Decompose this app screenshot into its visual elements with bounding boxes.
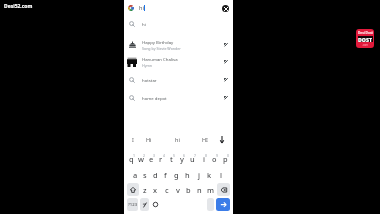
staticText: 3 (153, 153, 156, 158)
staticText: g (174, 170, 179, 180)
staticText: HI (202, 136, 208, 143)
staticText: DOSTI (358, 36, 373, 42)
staticText: Song by Stevie Wonder (142, 46, 181, 51)
staticText: c (165, 185, 169, 195)
button[interactable]: Voice input (150, 197, 161, 212)
button[interactable]: I (124, 131, 142, 148)
button[interactable]: Insert suggestion (220, 35, 231, 54)
button[interactable]: n (194, 182, 205, 197)
staticText: hi (175, 136, 180, 143)
button[interactable]: Search (216, 198, 230, 211)
button[interactable]: p (220, 151, 231, 166)
staticText: y (180, 154, 184, 164)
staticText: I (132, 136, 134, 143)
staticText: 9 (216, 153, 219, 158)
button[interactable]: v (172, 182, 183, 197)
button[interactable]: Happy Birthday (124, 35, 233, 54)
button[interactable]: u (187, 151, 198, 166)
button[interactable]: x (150, 182, 161, 197)
button[interactable]: r (156, 151, 166, 166)
button[interactable]: hi (124, 15, 233, 33)
button[interactable]: hi (124, 0, 233, 15)
staticText: f (164, 170, 167, 180)
staticText: 5 (173, 153, 176, 158)
staticText: 7 (194, 153, 197, 158)
button[interactable]: HI (196, 131, 214, 148)
button[interactable]: y (176, 151, 187, 166)
staticText: d (153, 170, 158, 180)
button[interactable]: q (126, 151, 136, 166)
staticText: hotstar (142, 77, 157, 83)
button[interactable]: Period (207, 198, 214, 211)
staticText: home depot (142, 95, 167, 101)
button[interactable]: Hi (140, 131, 158, 148)
staticText: l (220, 170, 222, 180)
staticText: 4 (163, 153, 166, 158)
staticText: Hanuman Chalisa (142, 56, 178, 62)
staticText: j (198, 170, 200, 180)
button[interactable]: w (136, 151, 146, 166)
staticText: o (212, 154, 217, 164)
button[interactable]: m (205, 182, 216, 197)
button[interactable]: Logo (356, 29, 374, 48)
button[interactable]: d (150, 167, 160, 182)
staticText: Hi (146, 136, 152, 143)
button[interactable]: h (182, 167, 193, 182)
staticText: a (133, 170, 138, 180)
staticText: 0 (227, 153, 230, 158)
button[interactable]: hi (168, 131, 186, 148)
staticText: 2 (143, 153, 146, 158)
button[interactable]: Insert suggestion (220, 71, 231, 89)
button[interactable]: o (209, 151, 220, 166)
button[interactable]: k (204, 167, 215, 182)
button[interactable]: j (193, 167, 204, 182)
button[interactable]: g (171, 167, 182, 182)
button[interactable]: Hanuman Chalisa (124, 52, 233, 71)
staticText: m (207, 185, 214, 195)
staticText: n (197, 185, 202, 195)
button[interactable]: s (140, 167, 150, 182)
staticText: k (207, 170, 212, 180)
button[interactable]: b (183, 182, 194, 197)
staticText: 6 (183, 153, 186, 158)
button[interactable]: Backspace (217, 183, 230, 196)
staticText: u (190, 154, 195, 164)
button[interactable]: l (215, 167, 226, 182)
button[interactable]: home depot (124, 89, 233, 107)
staticText: s (143, 170, 147, 180)
button[interactable]: Insert suggestion (220, 89, 231, 107)
staticText: i (203, 154, 205, 164)
staticText: 8 (205, 153, 208, 158)
staticText: ?123 (128, 202, 138, 208)
button[interactable]: a (130, 167, 140, 182)
staticText: hi (142, 21, 146, 27)
button[interactable]: z (140, 182, 150, 197)
button[interactable]: t (166, 151, 176, 166)
staticText: hi (139, 4, 144, 12)
staticText: 1 (133, 153, 136, 158)
button[interactable]: c (161, 182, 172, 197)
button[interactable]: Insert suggestion (220, 52, 231, 71)
button[interactable]: Shift (127, 183, 139, 196)
staticText: b (186, 185, 191, 195)
button[interactable]: e (146, 151, 156, 166)
staticText: Desi52.com (4, 3, 33, 10)
button[interactable]: i (198, 151, 209, 166)
staticText: x (153, 185, 158, 195)
staticText: r (159, 154, 163, 164)
staticText: v (176, 185, 180, 195)
button[interactable]: Numbers and symbols (127, 198, 138, 211)
staticText: p (223, 154, 228, 164)
staticText: Hymn (142, 63, 153, 68)
button[interactable]: Clear search (222, 5, 229, 12)
button[interactable]: hotstar (124, 71, 233, 89)
button[interactable]: f (160, 167, 171, 182)
staticText: Happy Birthday (142, 39, 174, 45)
staticText: h (185, 170, 190, 180)
staticText: t (170, 154, 173, 164)
staticText: q (129, 154, 134, 164)
button[interactable]: Sticker (140, 198, 149, 211)
button[interactable]: Expand suggestions (216, 131, 228, 148)
staticText: e (149, 154, 154, 164)
